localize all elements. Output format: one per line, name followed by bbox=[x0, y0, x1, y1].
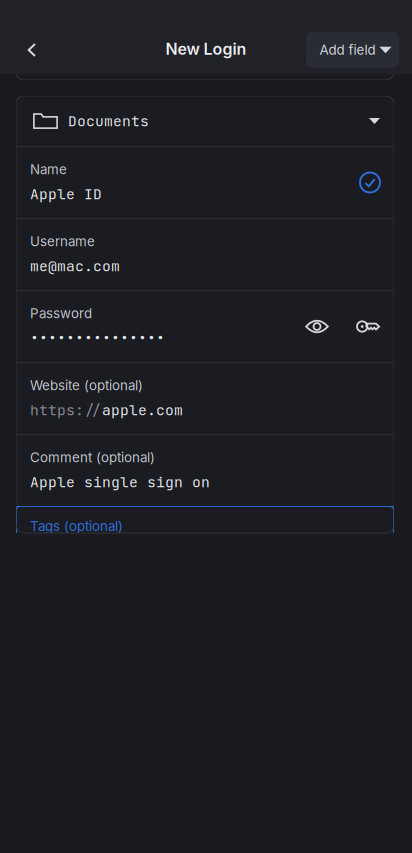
staticText: Username bbox=[30, 233, 95, 249]
staticText: Apple ID bbox=[30, 184, 102, 204]
staticText: me@mac.com bbox=[30, 256, 120, 276]
staticText: Apple single sign on bbox=[30, 472, 210, 492]
staticText: Name bbox=[30, 161, 67, 177]
staticText: Documents bbox=[68, 111, 149, 131]
button[interactable]: Username bbox=[16, 219, 394, 290]
staticText: apple.com bbox=[102, 400, 183, 420]
button[interactable]: Generate password bbox=[356, 318, 380, 335]
staticText: Password bbox=[30, 305, 92, 321]
button[interactable]: Comment (optional) bbox=[16, 435, 394, 506]
staticText: New Login bbox=[165, 39, 246, 59]
button[interactable]: Website (optional) bbox=[16, 363, 394, 434]
button[interactable]: Add field bbox=[306, 32, 399, 68]
staticText: ••••••••••••••• bbox=[30, 328, 165, 348]
button[interactable]: Show password bbox=[305, 318, 329, 335]
staticText: Add field bbox=[319, 42, 375, 58]
button[interactable]: Name bbox=[16, 147, 394, 218]
staticText: Comment (optional) bbox=[30, 449, 155, 465]
staticText: Tags (optional) bbox=[30, 518, 123, 534]
button[interactable]: Back bbox=[10, 28, 54, 72]
staticText: Website (optional) bbox=[30, 377, 143, 393]
button[interactable]: Tags (optional) bbox=[16, 506, 394, 533]
staticText: https:// bbox=[30, 400, 102, 420]
button[interactable]: Documents bbox=[16, 96, 394, 146]
button[interactable]: Password bbox=[16, 291, 394, 362]
